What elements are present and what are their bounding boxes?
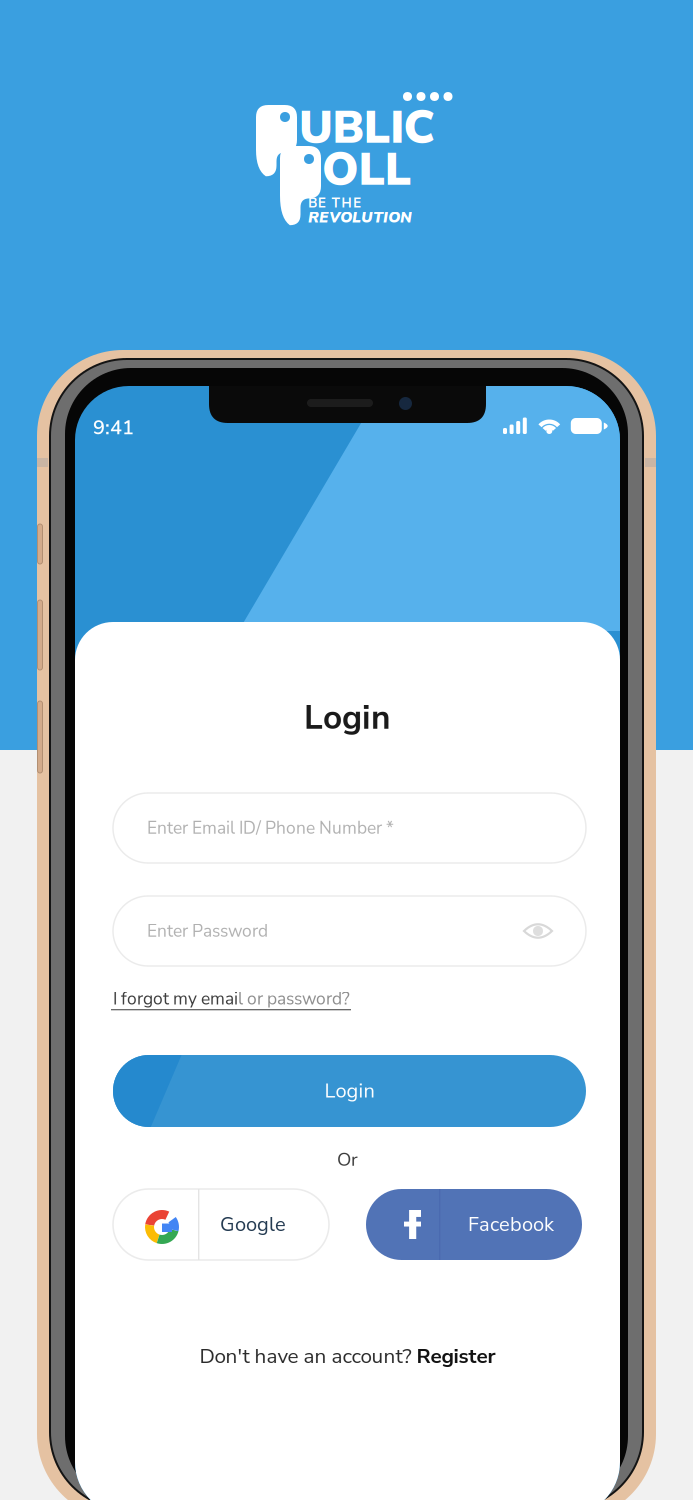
button[interactable]: Enter Email ID/ Phone Number * xyxy=(113,793,586,863)
staticText: l or password? xyxy=(238,987,350,1011)
button[interactable]: Don't have an account? xyxy=(199,1342,495,1370)
staticText: 9:41 xyxy=(93,414,134,441)
staticText: Enter Password xyxy=(147,919,268,943)
button[interactable]: Enter Password xyxy=(113,896,586,966)
staticText: Or xyxy=(337,1147,358,1172)
staticText: Login xyxy=(304,695,391,740)
button[interactable]: Login xyxy=(113,1055,586,1127)
staticText: UBLIC xyxy=(299,97,435,159)
button[interactable]: I forgot my emai xyxy=(111,987,584,1017)
staticText: Don't have an account? xyxy=(199,1342,416,1370)
staticText: OLL xyxy=(322,139,412,201)
staticText: I forgot my emai xyxy=(113,987,238,1011)
staticText: BE THE xyxy=(308,194,361,212)
staticText: Facebook xyxy=(468,1211,554,1238)
button[interactable]: Facebook xyxy=(366,1189,582,1260)
button[interactable]: Google xyxy=(113,1189,329,1260)
staticText: Google xyxy=(220,1211,286,1238)
staticText: Login xyxy=(324,1077,374,1105)
staticText: Enter Email ID/ Phone Number * xyxy=(147,816,394,840)
staticText: Register xyxy=(416,1342,495,1370)
staticText: REVOLUTION xyxy=(308,207,412,228)
